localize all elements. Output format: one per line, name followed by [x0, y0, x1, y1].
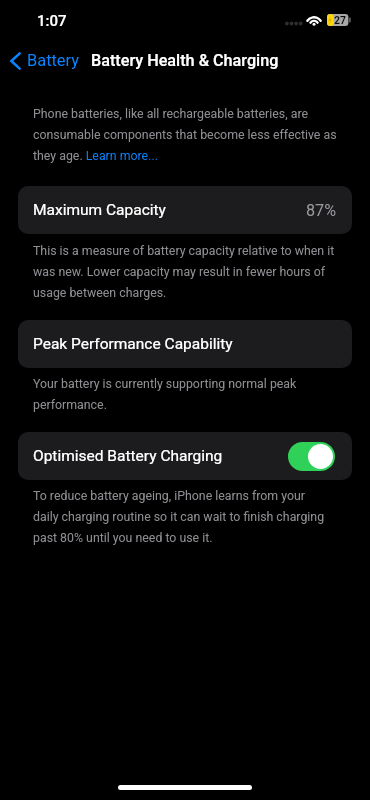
button[interactable]: Optimised Battery Charging toggle — [288, 442, 335, 471]
button[interactable]: Optimised Battery Charging — [18, 432, 352, 480]
staticText: 87% — [306, 201, 337, 220]
staticText: 1:07 — [37, 12, 67, 30]
staticText: This is a measure of battery capacity re… — [33, 238, 335, 301]
staticText: Phone batteries, like all rechargeable b… — [33, 101, 337, 164]
staticText: Battery — [27, 51, 79, 70]
staticText: To reduce battery ageing, iPhone learns … — [33, 483, 325, 546]
button[interactable]: Back to Battery — [10, 51, 79, 70]
staticText: Your battery is currently supporting nor… — [33, 371, 297, 413]
staticText: Peak Performance Capability — [33, 335, 233, 353]
staticText: Maximum Capacity — [33, 201, 166, 219]
staticText: Optimised Battery Charging — [33, 447, 223, 465]
button[interactable]: Maximum Capacity — [18, 186, 352, 234]
staticText: 27 — [334, 14, 347, 26]
button[interactable]: Peak Performance Capability — [18, 320, 352, 368]
staticText: Battery Health & Charging — [91, 51, 279, 70]
